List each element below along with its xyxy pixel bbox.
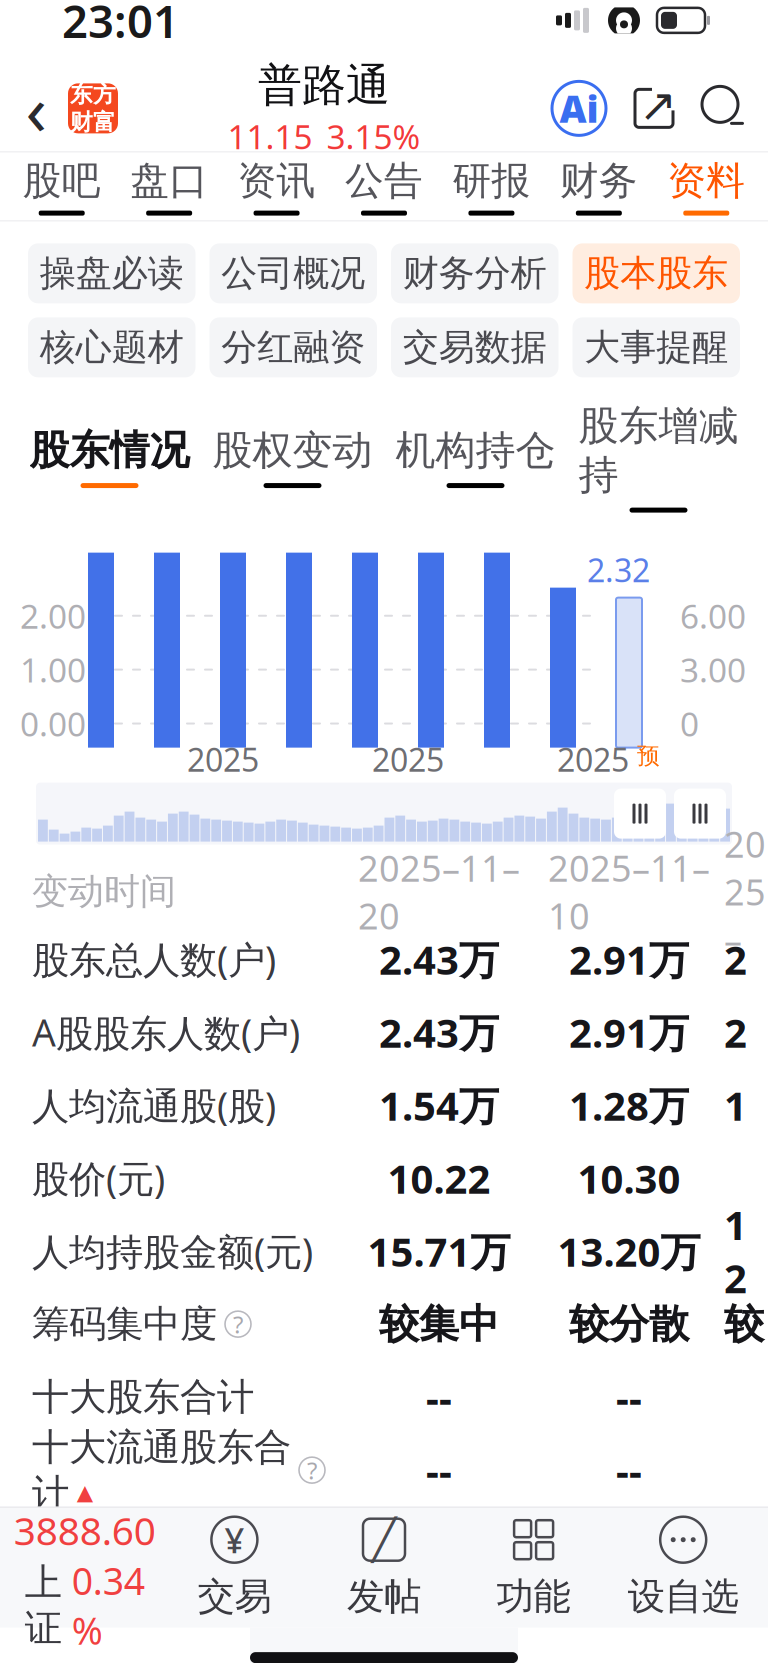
- staticText: 1: [724, 1079, 747, 1132]
- staticText: 15.71万: [367, 1225, 510, 1278]
- button[interactable]: ¥: [160, 1516, 309, 1620]
- button[interactable]: ▲: [10, 1480, 160, 1655]
- staticText: A股股东人数(户): [32, 1007, 300, 1057]
- staticText: 公告: [345, 157, 423, 205]
- staticText: 09-30: [182, 783, 264, 825]
- button[interactable]: 东方财富: [68, 83, 118, 133]
- button[interactable]: 核心题材: [28, 317, 195, 377]
- staticText: 0: [680, 701, 699, 746]
- button[interactable]: 调整范围: [674, 789, 726, 839]
- staticText: 设自选: [628, 1574, 739, 1620]
- staticText: ╱: [372, 1517, 396, 1562]
- button[interactable]: 财务分析: [391, 243, 558, 303]
- staticText: 股价(元): [32, 1153, 165, 1203]
- staticText: 大事提醒: [584, 325, 728, 369]
- staticText: 东方: [70, 80, 116, 108]
- staticText: 筹码集中度: [32, 1301, 217, 1347]
- staticText: 2025: [372, 738, 444, 781]
- staticText: 2.32: [587, 549, 650, 591]
- staticText: 研报: [452, 157, 530, 205]
- button[interactable]: 调整范围: [614, 789, 666, 839]
- button[interactable]: 盘口: [115, 152, 223, 220]
- button[interactable]: 财务: [545, 152, 652, 220]
- button[interactable]: 研报: [438, 152, 545, 220]
- button[interactable]: 分红融资: [209, 317, 377, 377]
- staticText: 2025: [557, 738, 629, 781]
- staticText: ?: [307, 1454, 317, 1486]
- button[interactable]: 交易数据: [391, 317, 558, 377]
- staticText: 12: [724, 1198, 747, 1304]
- staticText: 2025–11–10: [548, 844, 710, 939]
- button[interactable]: 设自选: [608, 1516, 758, 1620]
- button[interactable]: 股本股东: [572, 243, 740, 303]
- staticText: ▲: [77, 1480, 93, 1504]
- staticText: 2.00: [20, 594, 86, 638]
- button[interactable]: 股东增减持: [567, 401, 750, 513]
- button[interactable]: 股东情况: [18, 426, 201, 488]
- staticText: 23:01: [62, 0, 179, 50]
- staticText: 交易数据: [403, 325, 547, 369]
- staticText: 变动时间: [32, 869, 176, 914]
- button[interactable]: 搜索: [696, 80, 752, 136]
- staticText: 预: [637, 742, 660, 770]
- staticText: 股权变动: [212, 426, 372, 475]
- staticText: 2.91万: [569, 1006, 689, 1059]
- staticText: 股吧: [23, 157, 101, 205]
- button[interactable]: 股吧: [8, 152, 115, 220]
- button[interactable]: 功能: [459, 1516, 608, 1620]
- staticText: 较: [724, 1300, 764, 1349]
- staticText: 财务分析: [403, 251, 547, 295]
- button[interactable]: 分享: [624, 78, 684, 138]
- staticText: 2025–11–20: [358, 844, 520, 939]
- staticText: 股本股东: [584, 251, 728, 295]
- button[interactable]: AI 助手: [548, 77, 610, 139]
- staticText: 十大股东合计: [32, 1374, 254, 1420]
- staticText: 股东增减持: [578, 401, 738, 500]
- staticText: ↗: [639, 80, 677, 131]
- button[interactable]: 机构持仓: [384, 426, 567, 488]
- staticText: 11.15: [227, 114, 312, 159]
- staticText: 人均持股金额(元): [32, 1226, 313, 1276]
- staticText: ?: [233, 1308, 243, 1340]
- staticText: Ai: [559, 84, 598, 133]
- staticText: ‹: [25, 62, 46, 154]
- button[interactable]: 资讯: [223, 152, 330, 220]
- staticText: 较分散: [569, 1300, 689, 1349]
- staticText: 10-31: [367, 783, 449, 825]
- staticText: 2: [724, 933, 747, 986]
- staticText: 功能: [497, 1574, 571, 1620]
- staticText: 0.34%: [72, 1556, 145, 1655]
- staticText: --: [426, 1371, 452, 1424]
- button[interactable]: ╱: [309, 1516, 459, 1620]
- button[interactable]: 公司概况: [209, 243, 377, 303]
- staticText: 交易: [197, 1574, 271, 1620]
- staticText: 2: [724, 1006, 747, 1059]
- staticText: 盘口: [130, 157, 208, 205]
- staticText: 人均流通股(股): [32, 1080, 276, 1130]
- staticText: 11-27: [552, 783, 634, 825]
- staticText: 分红融资: [221, 325, 365, 369]
- button[interactable]: 公告: [330, 152, 438, 220]
- staticText: 0.00: [20, 701, 86, 746]
- staticText: 3888.60: [14, 1504, 156, 1556]
- staticText: 1.00: [20, 647, 86, 692]
- staticText: 股东情况: [29, 426, 189, 475]
- staticText: ¥: [224, 1517, 244, 1563]
- staticText: 机构持仓: [395, 426, 555, 475]
- staticText: 发帖: [347, 1574, 421, 1620]
- staticText: 10.22: [387, 1152, 490, 1205]
- button[interactable]: 操盘必读: [28, 243, 195, 303]
- staticText: --: [616, 1371, 642, 1424]
- staticText: 2025: [187, 738, 259, 781]
- staticText: 6.00: [680, 594, 746, 638]
- staticText: 1.54万: [379, 1079, 499, 1132]
- button[interactable]: 大事提醒: [572, 317, 740, 377]
- staticText: 3.15%: [326, 114, 420, 159]
- staticText: 十大流通股东合计: [32, 1424, 291, 1516]
- button[interactable]: 股权变动: [201, 426, 384, 488]
- staticText: 资料: [667, 157, 745, 205]
- staticText: 普路通: [258, 58, 390, 112]
- button[interactable]: 返回: [12, 79, 60, 137]
- staticText: 1.28万: [569, 1079, 689, 1132]
- button[interactable]: 资料: [653, 152, 760, 220]
